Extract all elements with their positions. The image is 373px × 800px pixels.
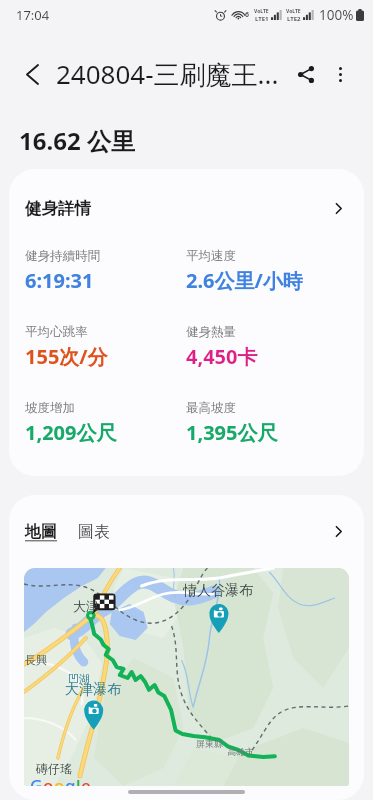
button[interactable]: More options <box>329 56 351 92</box>
staticText: 6 <box>245 10 250 20</box>
staticText: 大津瀑布 <box>65 681 121 699</box>
staticText: 17:04 <box>16 6 50 24</box>
staticText: 磚仔瑤 <box>36 761 72 776</box>
button[interactable]: Share <box>288 55 324 93</box>
staticText: o <box>54 774 65 786</box>
staticText: VoLTE <box>286 8 301 15</box>
staticText: G <box>30 774 43 786</box>
staticText: 健身熱量 <box>186 324 236 340</box>
staticText: 健身詳情 <box>25 198 331 219</box>
button[interactable]: Back <box>14 56 50 92</box>
button[interactable]: Route map <box>24 568 349 786</box>
staticText: 高雄市 <box>227 746 254 757</box>
button[interactable]: 健身詳情 <box>9 169 364 248</box>
staticText: 1,395公尺 <box>186 419 278 446</box>
button[interactable]: 地圖 <box>25 522 57 542</box>
staticText: 155次/分 <box>25 343 108 370</box>
staticText: 大津 <box>73 598 99 614</box>
staticText: 平均心跳率 <box>25 324 88 340</box>
staticText: LTE2 <box>287 15 301 23</box>
button[interactable]: 圖表 <box>78 522 110 542</box>
staticText: 情人谷瀑布 <box>183 582 253 600</box>
staticText: 4,450卡 <box>186 343 258 370</box>
staticText: 長興 <box>25 653 47 667</box>
staticText: 最高坡度 <box>186 400 236 416</box>
staticText: 圖表 <box>78 522 110 542</box>
staticText: 平均速度 <box>186 248 236 264</box>
staticText: LTE1 <box>255 15 269 23</box>
staticText: 16.62 公里 <box>19 124 135 157</box>
staticText: 6:19:31 <box>25 267 94 294</box>
staticText: 2.6公里/小時 <box>186 267 303 294</box>
staticText: 地圖 <box>25 522 57 542</box>
staticText: 240804-三刷魔王... <box>56 56 288 92</box>
staticText: g <box>65 774 76 786</box>
staticText: 屏東縣 <box>196 738 223 749</box>
staticText: l <box>76 774 81 786</box>
staticText: 100% <box>319 6 354 24</box>
staticText: VoLTE <box>254 8 269 15</box>
staticText: o <box>43 774 54 786</box>
staticText: e <box>81 774 91 786</box>
staticText: 坡度增加 <box>25 400 75 416</box>
staticText: 1,209公尺 <box>25 419 117 446</box>
staticText: 健身持續時間 <box>25 248 100 264</box>
staticText: 凹湖 <box>68 672 90 686</box>
